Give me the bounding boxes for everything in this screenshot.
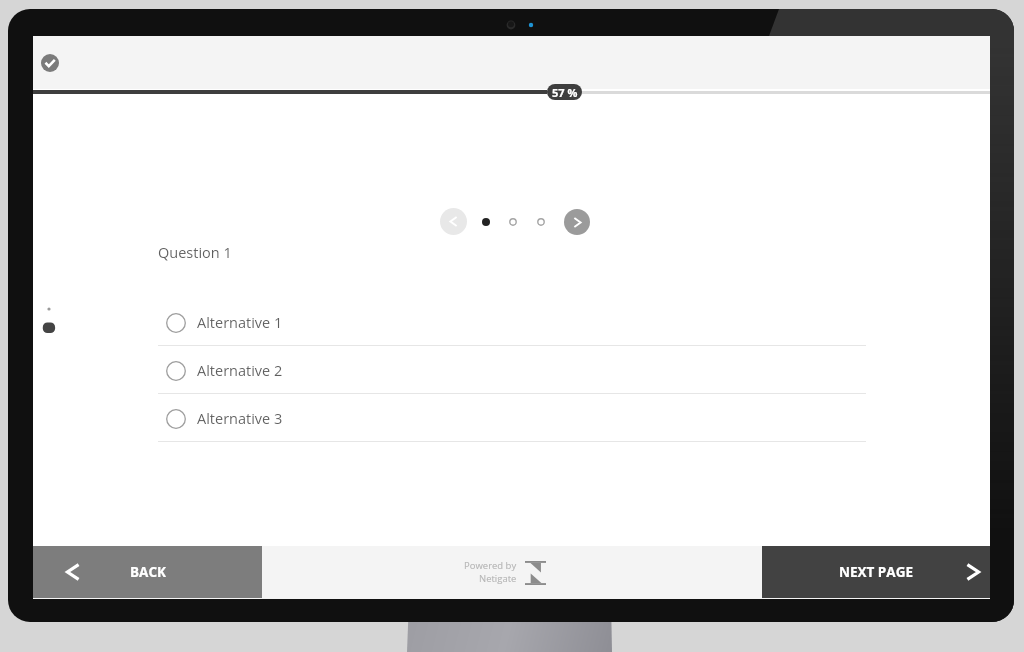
staticText: Question 1 [158, 243, 232, 263]
button[interactable] [537, 218, 545, 226]
staticText: Alternative 2 [197, 361, 283, 381]
staticText: NEXT PAGE [839, 563, 913, 581]
button[interactable]: NEXT PAGE [762, 546, 990, 598]
button[interactable]: Alternative 3 [158, 394, 866, 441]
button[interactable]: BACK [33, 546, 262, 598]
button[interactable]: Alternative 1 [158, 298, 866, 345]
button[interactable] [509, 218, 517, 226]
button[interactable] [482, 218, 490, 226]
staticText: Powered by [464, 559, 517, 572]
staticText: Alternative 3 [197, 409, 283, 429]
staticText: 57 % [552, 85, 578, 100]
button[interactable]: Next question [564, 209, 590, 235]
staticText: BACK [130, 563, 166, 581]
staticText: Alternative 1 [197, 313, 283, 333]
button[interactable]: Alternative 2 [158, 346, 866, 393]
button[interactable]: Previous question [440, 208, 467, 235]
staticText: Netigate [479, 572, 517, 585]
button[interactable]: Survey complete [41, 54, 59, 72]
